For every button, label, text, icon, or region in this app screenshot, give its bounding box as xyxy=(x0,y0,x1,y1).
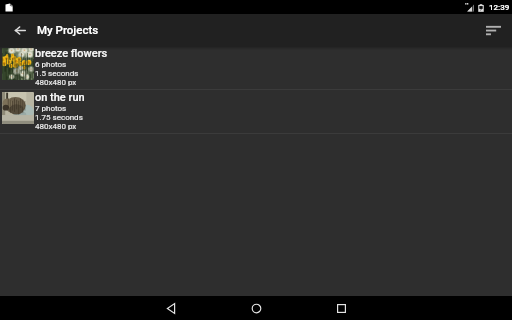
staticText: 7 photos xyxy=(35,104,67,113)
staticText: 480x480 px xyxy=(35,122,77,131)
staticText: 1.75 seconds xyxy=(35,113,83,122)
button[interactable]: Sort xyxy=(477,14,509,46)
button[interactable]: on the run xyxy=(0,90,512,133)
staticText: My Projects xyxy=(37,23,99,36)
button[interactable]: breeze flowers xyxy=(0,46,512,89)
staticText: 480x480 px xyxy=(35,78,77,87)
staticText: 1.5 seconds xyxy=(35,69,79,78)
button[interactable]: Back xyxy=(5,15,35,45)
button[interactable]: Recents xyxy=(309,296,374,320)
button[interactable]: Home xyxy=(224,296,289,320)
staticText: 6 photos xyxy=(35,60,67,69)
staticText: on the run xyxy=(35,91,85,104)
button[interactable]: Back xyxy=(139,296,204,320)
staticText: breeze flowers xyxy=(35,47,108,60)
staticText: 12:39 xyxy=(489,3,510,12)
